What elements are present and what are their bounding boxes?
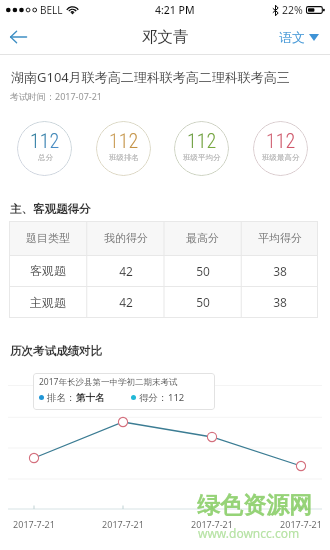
staticText: 22% bbox=[282, 3, 303, 17]
staticText: 最高分 bbox=[186, 231, 219, 245]
staticText: 2017-7-21 bbox=[188, 518, 236, 530]
staticText: 第十名 bbox=[76, 392, 105, 404]
button[interactable]: 语文 bbox=[279, 29, 319, 45]
staticText: 2017年长沙县第一中学初二期末考试 bbox=[39, 376, 178, 388]
staticText: 42 bbox=[119, 294, 133, 310]
button[interactable]: 112 bbox=[253, 121, 308, 176]
staticText: 绿色资源网 bbox=[197, 491, 312, 520]
button[interactable]: Back bbox=[4, 23, 32, 51]
staticText: 考试时间：2017-07-21 bbox=[10, 90, 102, 102]
staticText: 112 bbox=[109, 129, 139, 152]
staticText: 2017-7-21 bbox=[277, 518, 325, 530]
staticText: 题目类型 bbox=[26, 231, 70, 245]
staticText: 班级最高分 bbox=[262, 153, 300, 162]
staticText: 客观题 bbox=[30, 263, 66, 278]
button[interactable]: 112 bbox=[96, 121, 151, 176]
staticText: 42 bbox=[119, 263, 133, 279]
button[interactable]: 112 bbox=[174, 121, 229, 176]
staticText: 38 bbox=[273, 263, 287, 279]
staticText: 112 bbox=[168, 391, 185, 404]
staticText: 主、客观题得分 bbox=[10, 202, 91, 216]
staticText: 112 bbox=[266, 129, 296, 152]
button[interactable]: 112 bbox=[17, 121, 72, 176]
staticText: 湖南G104月联考高二理科联考高二理科联考高三 bbox=[11, 68, 290, 86]
staticText: 平均得分 bbox=[258, 231, 302, 245]
staticText: 2017-7-21 bbox=[99, 518, 147, 530]
staticText: 语文 bbox=[279, 29, 305, 45]
staticText: 2017-7-21 bbox=[10, 518, 58, 530]
staticText: 历次考试成绩对比 bbox=[10, 344, 102, 358]
staticText: 排名： bbox=[47, 392, 76, 404]
staticText: 50 bbox=[196, 263, 210, 279]
staticText: BELL bbox=[40, 3, 63, 17]
staticText: 班级排名 bbox=[109, 153, 139, 162]
staticText: 我的得分 bbox=[104, 231, 148, 245]
staticText: 4:21 PM bbox=[155, 3, 195, 17]
staticText: 总分 bbox=[38, 153, 53, 162]
staticText: 主观题 bbox=[30, 295, 66, 310]
staticText: 50 bbox=[196, 294, 210, 310]
staticText: www.downcc.com bbox=[198, 525, 300, 541]
staticText: 38 bbox=[273, 294, 287, 310]
staticText: 得分： bbox=[139, 392, 168, 404]
staticText: 班级平均分 bbox=[183, 153, 221, 162]
staticText: 邓文青 bbox=[142, 27, 189, 47]
staticText: 112 bbox=[187, 129, 217, 152]
staticText: 112 bbox=[30, 129, 60, 152]
